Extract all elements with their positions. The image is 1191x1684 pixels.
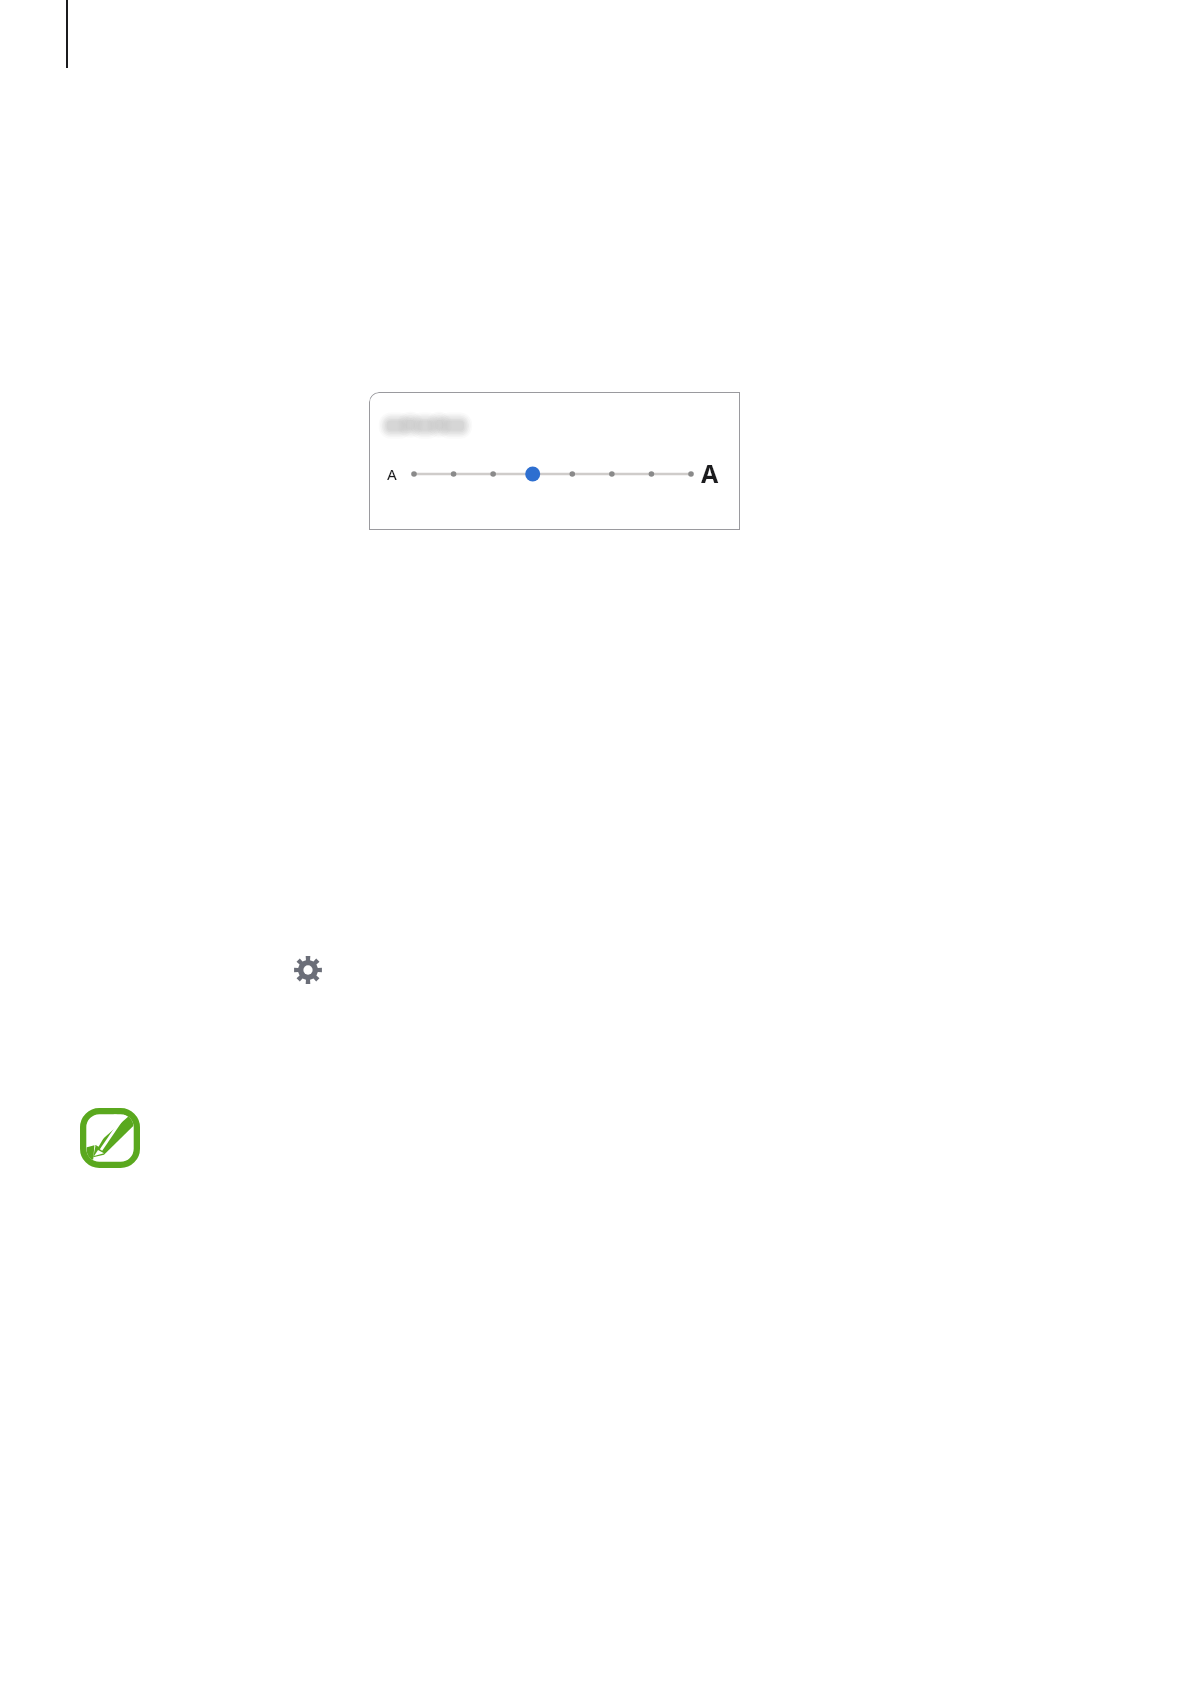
button[interactable]: Settings	[293, 955, 323, 985]
staticText: A	[701, 456, 719, 490]
staticText: A	[387, 464, 397, 484]
button[interactable]: A	[383, 454, 726, 494]
button[interactable]: A	[369, 392, 740, 530]
button[interactable]: Samsung Notes	[80, 1108, 140, 1168]
